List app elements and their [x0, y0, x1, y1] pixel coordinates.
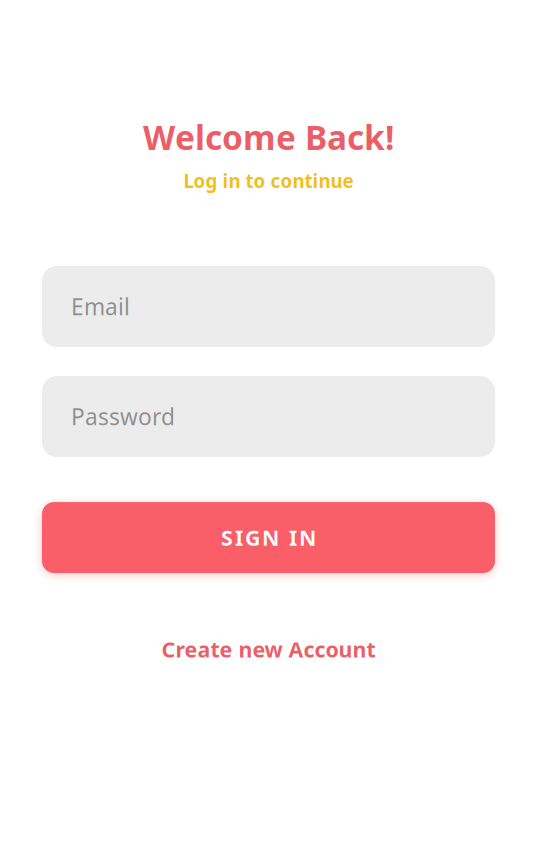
button[interactable]: Create new Account: [161, 635, 375, 663]
button[interactable]: Email: [42, 266, 495, 347]
staticText: Welcome Back!: [143, 115, 394, 159]
staticText: Email: [71, 291, 130, 322]
button[interactable]: SIGN IN: [42, 502, 495, 573]
staticText: Create new Account: [161, 635, 375, 663]
staticText: Log in to continue: [183, 168, 353, 193]
button[interactable]: Password: [42, 376, 495, 457]
staticText: Password: [71, 401, 175, 432]
staticText: SIGN IN: [221, 523, 316, 552]
